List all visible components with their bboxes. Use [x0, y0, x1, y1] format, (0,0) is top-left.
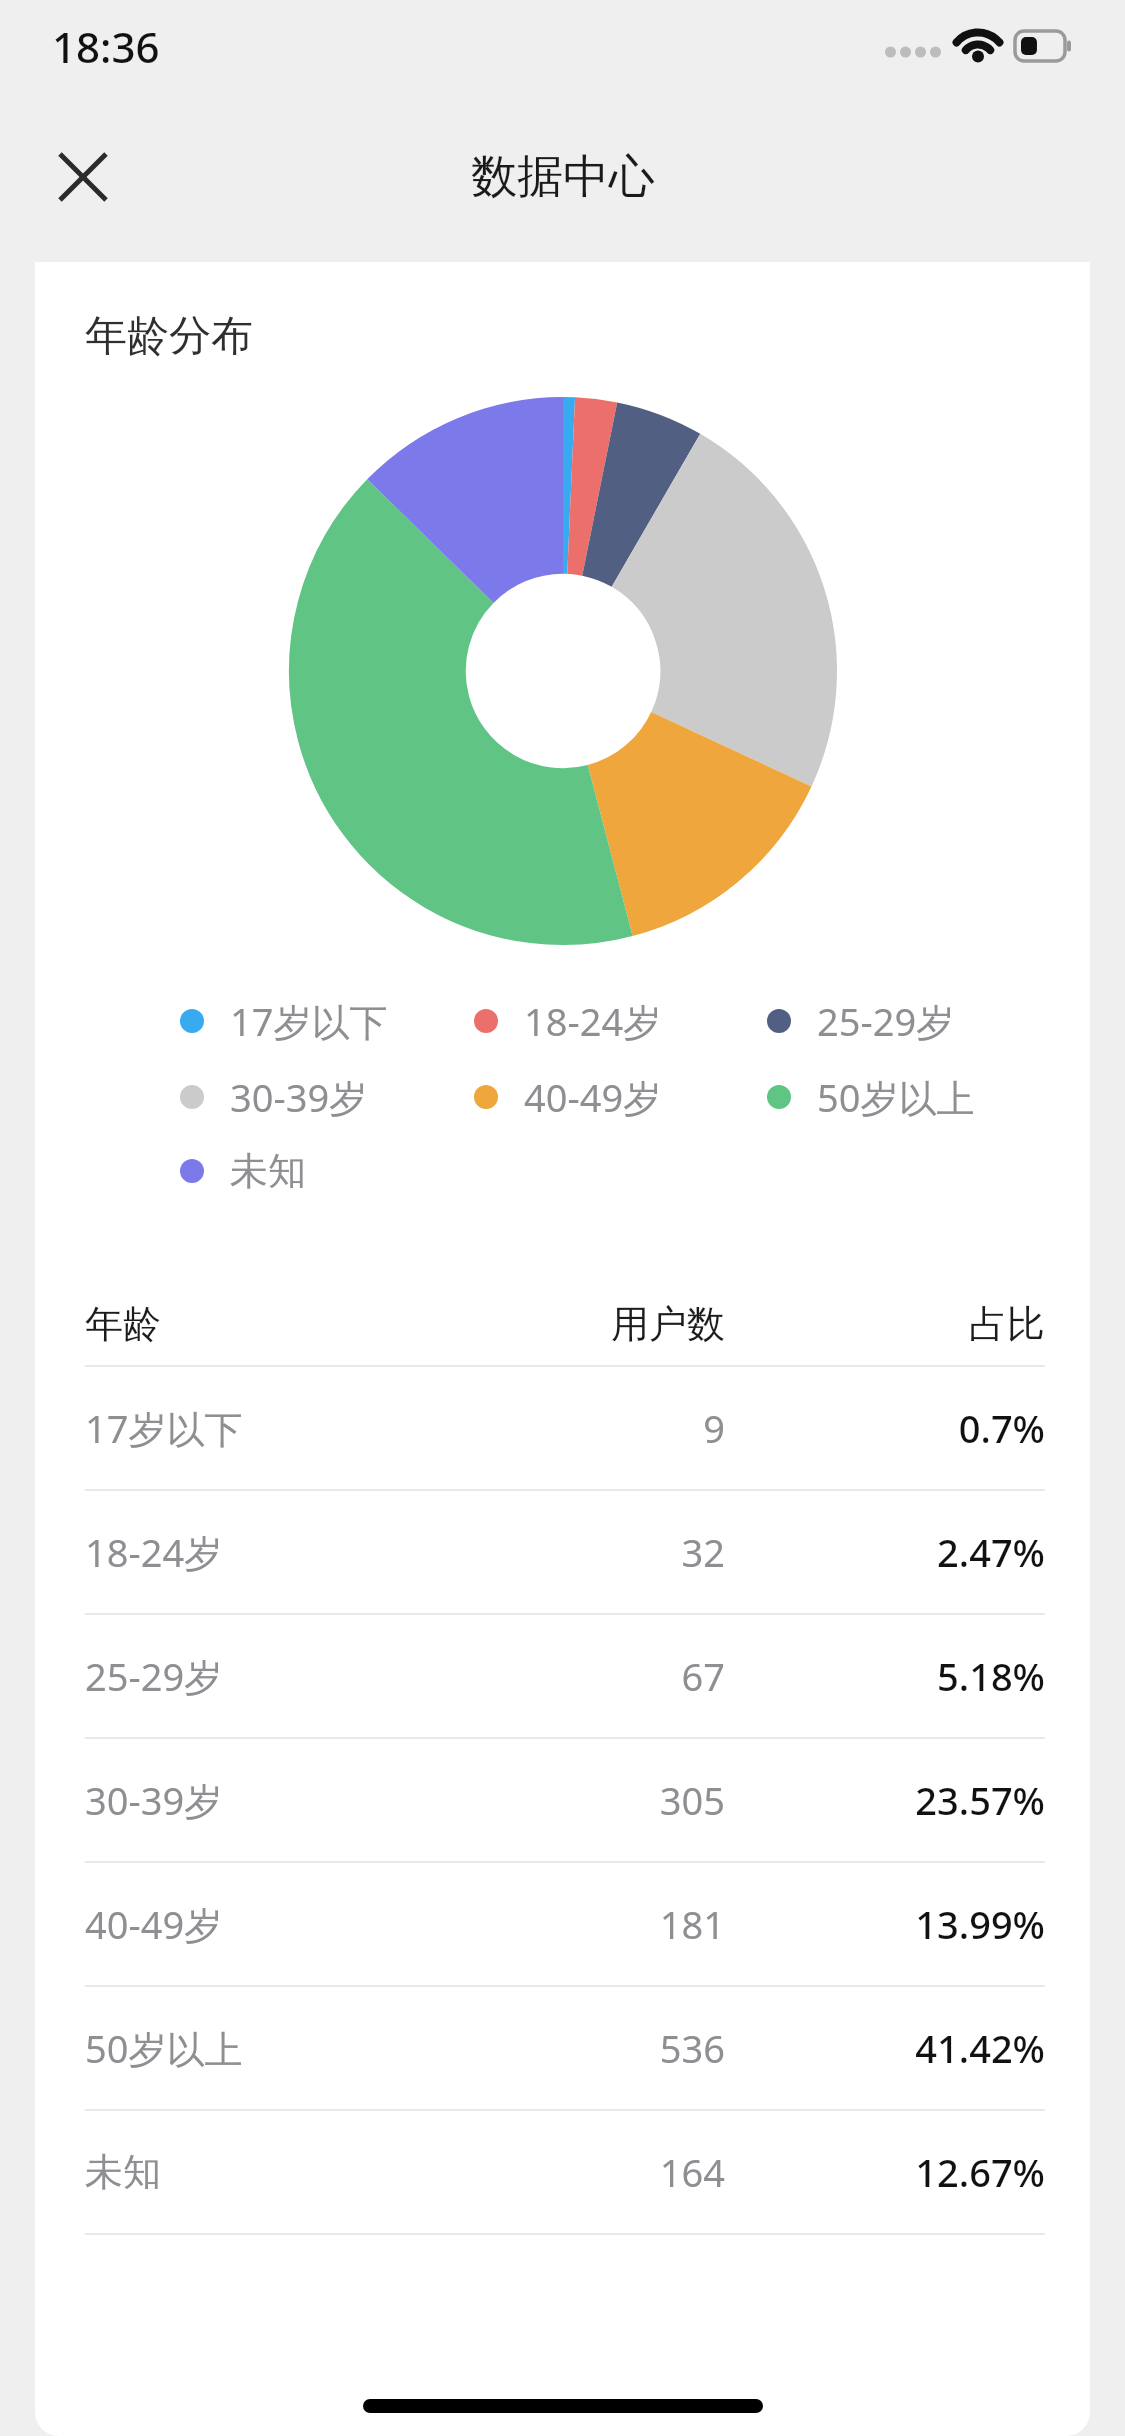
- staticText: 164: [425, 2146, 725, 2198]
- button[interactable]: 17岁以下: [35, 1367, 1090, 1489]
- button[interactable]: Close: [30, 124, 136, 230]
- staticText: 5.18%: [725, 1650, 1045, 1702]
- staticText: 2.47%: [725, 1526, 1045, 1578]
- staticText: 181: [425, 1898, 725, 1950]
- staticText: 25-29岁: [85, 1650, 425, 1702]
- staticText: 40-49岁: [524, 1071, 662, 1123]
- staticText: 13.99%: [725, 1898, 1045, 1950]
- staticText: 18-24岁: [85, 1526, 425, 1578]
- button[interactable]: 18-24岁: [35, 1491, 1090, 1613]
- button[interactable]: 30-39岁: [35, 1739, 1090, 1861]
- staticText: 536: [425, 2022, 725, 2074]
- staticText: 数据中心: [471, 148, 655, 206]
- staticText: 18:36: [52, 18, 160, 75]
- staticText: 未知: [230, 1147, 306, 1195]
- button[interactable]: 30-39岁: [180, 1071, 474, 1123]
- staticText: 18-24岁: [524, 995, 662, 1047]
- staticText: 30-39岁: [230, 1071, 368, 1123]
- button[interactable]: 40-49岁: [474, 1071, 767, 1123]
- staticText: 用户数: [425, 1300, 725, 1348]
- staticText: 32: [425, 1526, 725, 1578]
- staticText: 年龄: [85, 1300, 425, 1348]
- staticText: 12.67%: [725, 2146, 1045, 2198]
- staticText: 305: [425, 1774, 725, 1826]
- staticText: 17岁以下: [230, 995, 388, 1047]
- staticText: 50岁以上: [817, 1071, 975, 1123]
- staticText: 25-29岁: [817, 995, 955, 1047]
- button[interactable]: 未知: [180, 1147, 473, 1195]
- staticText: 未知: [85, 2148, 425, 2196]
- button[interactable]: 40-49岁: [35, 1863, 1090, 1985]
- staticText: 30-39岁: [85, 1774, 425, 1826]
- staticText: 9: [425, 1402, 725, 1454]
- staticText: 50岁以上: [85, 2022, 425, 2074]
- staticText: 67: [425, 1650, 725, 1702]
- button[interactable]: 25-29岁: [35, 1615, 1090, 1737]
- button[interactable]: 50岁以上: [767, 1071, 1060, 1123]
- staticText: 17岁以下: [85, 1402, 425, 1454]
- button[interactable]: 18-24岁: [474, 995, 767, 1047]
- button[interactable]: 17岁以下: [180, 995, 474, 1047]
- staticText: 40-49岁: [85, 1898, 425, 1950]
- staticText: 41.42%: [725, 2022, 1045, 2074]
- button[interactable]: 25-29岁: [767, 995, 1060, 1047]
- button[interactable]: 50岁以上: [35, 1987, 1090, 2109]
- staticText: 0.7%: [725, 1402, 1045, 1454]
- staticText: 年龄分布: [85, 310, 253, 363]
- button[interactable]: 未知: [35, 2111, 1090, 2233]
- staticText: 23.57%: [725, 1774, 1045, 1826]
- staticText: 占比: [725, 1300, 1045, 1348]
